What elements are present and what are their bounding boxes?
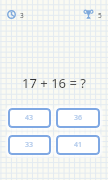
button[interactable]: Timer: [7, 10, 24, 19]
staticText: 17 + 16 = ?: [0, 74, 108, 92]
staticText: 41: [74, 140, 83, 150]
staticText: 43: [25, 113, 34, 123]
other: Timer: [7, 10, 16, 19]
staticText: 5: [98, 11, 102, 20]
button[interactable]: 33: [8, 135, 51, 155]
other: Score: [84, 10, 93, 19]
staticText: 36: [74, 113, 83, 123]
button[interactable]: 43: [8, 108, 51, 128]
staticText: 3: [20, 11, 24, 20]
button[interactable]: 41: [56, 135, 100, 155]
staticText: 33: [25, 140, 34, 150]
button[interactable]: 36: [56, 108, 100, 128]
button[interactable]: Score: [84, 10, 102, 19]
